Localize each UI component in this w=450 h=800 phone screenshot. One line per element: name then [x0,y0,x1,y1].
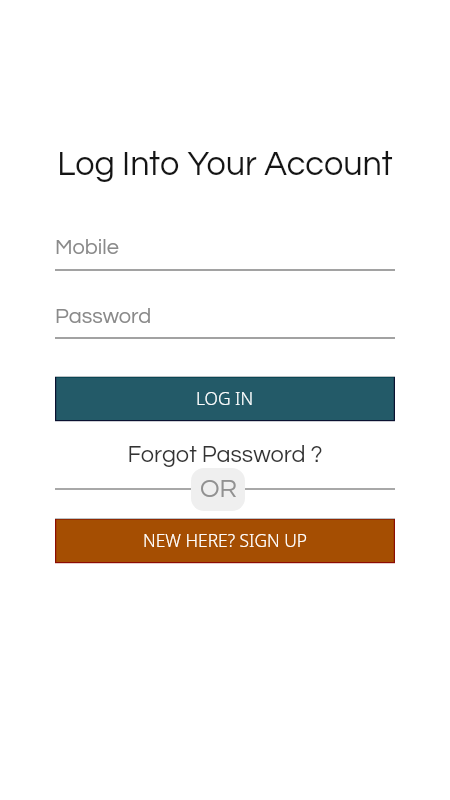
staticText: LOG IN [196,386,254,410]
button[interactable]: NEW HERE? SIGN UP [55,518,395,564]
button[interactable]: Forgot Password ? [0,443,450,471]
button[interactable]: Mobile [55,236,395,266]
staticText: OR [200,476,237,503]
button[interactable]: LOG IN [55,376,395,422]
staticText: Log Into Your Account [0,147,450,189]
staticText: NEW HERE? SIGN UP [143,528,308,552]
button[interactable]: Password [55,305,395,335]
